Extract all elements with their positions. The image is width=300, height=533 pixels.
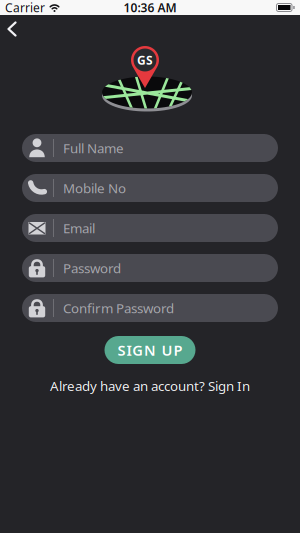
button[interactable] xyxy=(0,21,20,37)
staticText: SIGN UP xyxy=(118,340,182,360)
button[interactable]: Full Name xyxy=(22,134,278,162)
button[interactable]: SIGN UP xyxy=(104,336,195,364)
button[interactable]: Password xyxy=(22,254,278,282)
button[interactable]: Mobile No xyxy=(22,174,278,202)
button[interactable]: Already have an account? Sign In xyxy=(50,377,250,395)
staticText: Password xyxy=(63,259,121,277)
staticText: Full Name xyxy=(63,139,124,157)
staticText: 10:36 AM xyxy=(123,0,176,15)
button[interactable]: Confirm Password xyxy=(22,294,278,322)
staticText: Confirm Password xyxy=(63,299,174,317)
staticText: Email xyxy=(63,219,95,237)
staticText: Carrier xyxy=(5,0,45,15)
staticText: Mobile No xyxy=(63,179,126,197)
staticText: Already have an account? Sign In xyxy=(50,377,250,395)
staticText: GS xyxy=(137,52,153,68)
button[interactable]: Email xyxy=(22,214,278,242)
